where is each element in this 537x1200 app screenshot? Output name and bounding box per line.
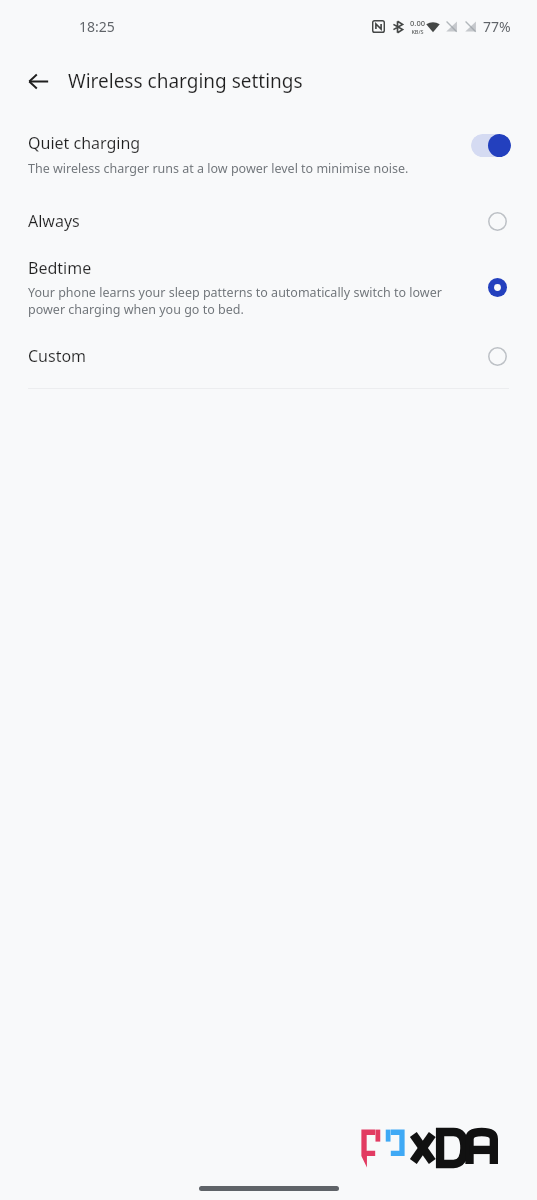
staticText: KB/S <box>411 28 424 35</box>
button[interactable]: Bedtime <box>0 251 537 324</box>
button[interactable]: Always option <box>483 207 511 235</box>
staticText: 18:25 <box>79 17 115 36</box>
staticText: Bedtime <box>28 257 92 279</box>
staticText: Quiet charging <box>28 132 141 154</box>
button[interactable]: Always <box>0 201 537 241</box>
staticText: 0.00 <box>410 18 425 28</box>
staticText: Custom <box>28 345 87 367</box>
staticText: Wireless charging settings <box>68 68 303 94</box>
button[interactable]: Bedtime option <box>483 273 511 301</box>
button[interactable]: Custom option <box>483 342 511 370</box>
staticText: Always <box>28 210 80 232</box>
button[interactable]: Quiet charging toggle <box>471 134 511 157</box>
button[interactable]: Quiet charging <box>0 128 537 185</box>
staticText: Your phone learns your sleep patterns to… <box>28 284 471 318</box>
button[interactable]: Custom <box>0 336 537 376</box>
staticText: 77% <box>483 17 511 36</box>
button[interactable]: Back <box>14 57 62 105</box>
staticText: The wireless charger runs at a low power… <box>28 160 409 177</box>
